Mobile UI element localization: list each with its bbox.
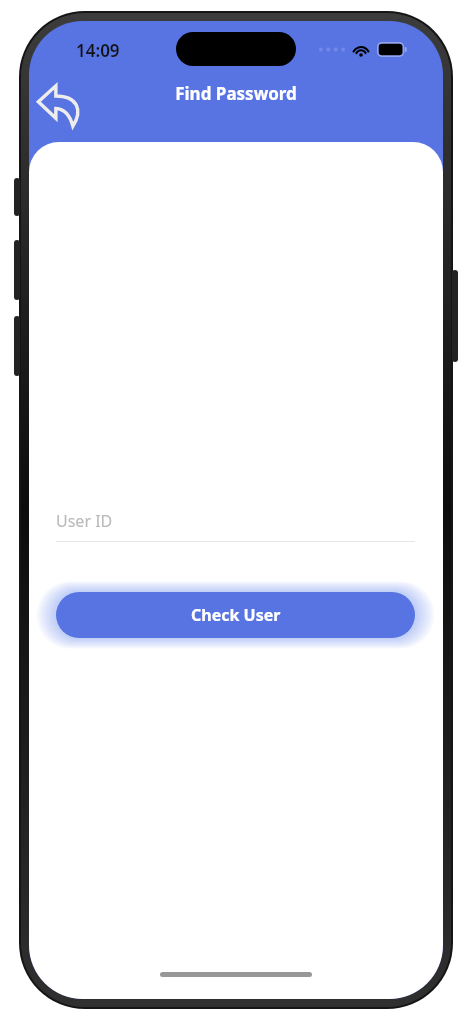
staticText: Check User <box>191 604 281 626</box>
button[interactable]: User ID <box>56 500 415 542</box>
button[interactable]: Back <box>29 77 93 135</box>
staticText: Find Password <box>175 82 297 105</box>
staticText: User ID <box>56 510 113 532</box>
button[interactable]: Check User <box>56 592 415 638</box>
staticText: 14:09 <box>76 39 120 62</box>
